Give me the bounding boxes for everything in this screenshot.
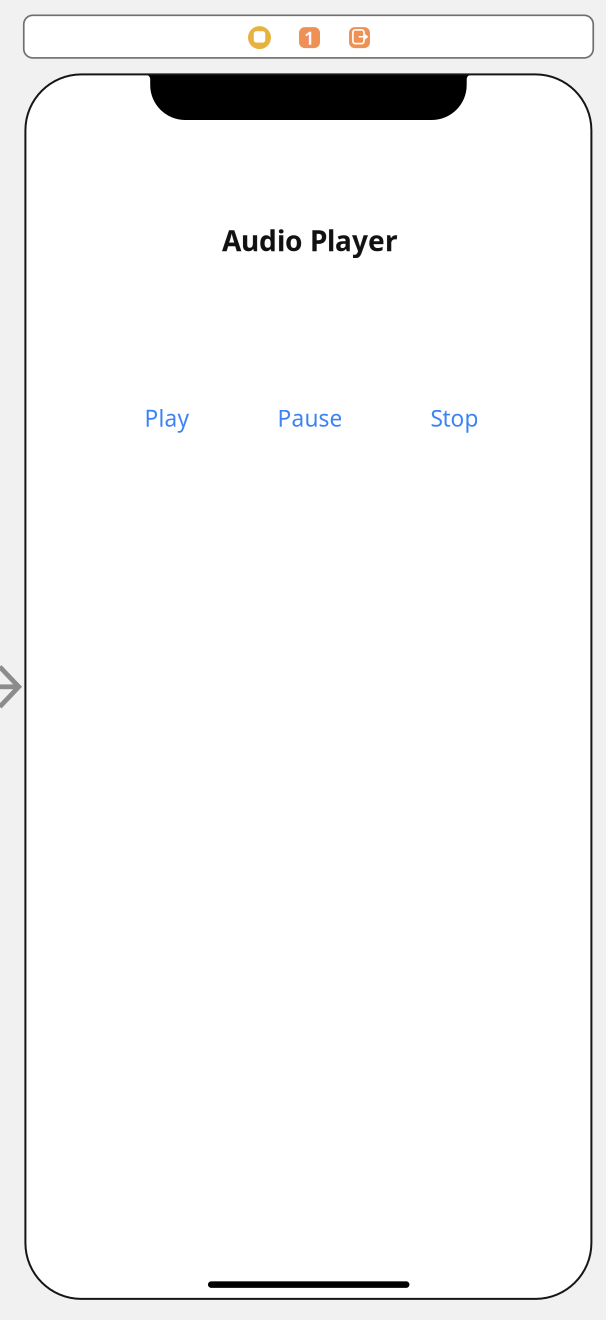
staticText: Pause bbox=[277, 403, 342, 433]
staticText: Audio Player bbox=[222, 222, 398, 259]
button[interactable]: Play bbox=[144, 403, 189, 433]
staticText: Stop bbox=[430, 403, 478, 433]
button[interactable]: Export bbox=[334, 17, 384, 59]
staticText: Play bbox=[144, 403, 189, 433]
staticText: 1 bbox=[304, 25, 315, 50]
button[interactable]: Pause bbox=[277, 403, 342, 433]
button[interactable]: Stop recording bbox=[234, 17, 284, 59]
button[interactable]: One recording bbox=[284, 17, 334, 59]
button[interactable]: Stop bbox=[430, 403, 478, 433]
